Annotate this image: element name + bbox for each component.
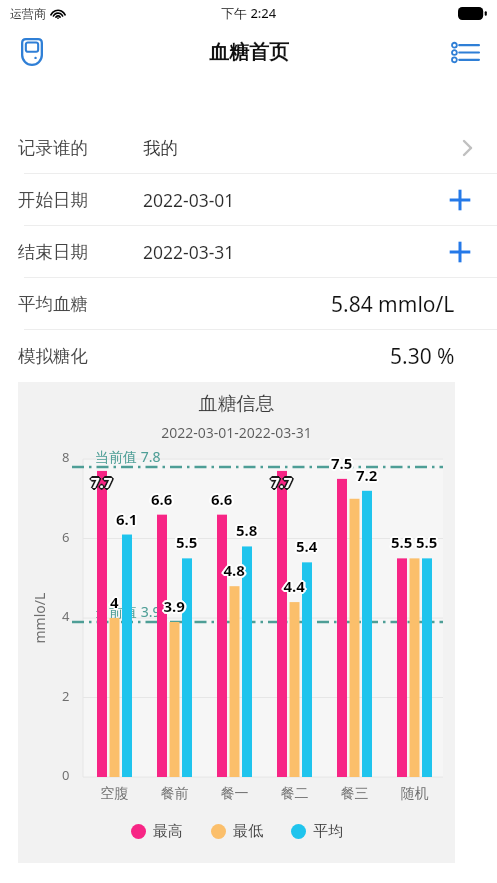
staticText: 5.84 mmlo/L [331,290,455,319]
button[interactable]: 模拟糖化 [0,330,497,382]
staticText: 记录谁的 [18,137,88,159]
button[interactable]: List menu [447,34,483,70]
button[interactable]: 平均血糖 [0,278,497,330]
button[interactable]: 记录谁的 [0,122,497,174]
staticText: 下午 2:24 [221,4,277,22]
staticText: 2022-03-01 [143,188,235,212]
staticText: 最低 [233,822,263,841]
staticText: 结束日期 [18,241,88,263]
staticText: 开始日期 [18,189,88,211]
staticText: 模拟糖化 [18,345,88,367]
staticText: 血糖首页 [209,40,289,65]
staticText: 最高 [153,822,183,841]
staticText: 平均 [313,822,343,841]
staticText: 运营商 [10,6,46,21]
staticText: 5.30 % [390,342,455,371]
staticText: 2022-03-01-2022-03-31 [18,423,455,442]
staticText: 血糖信息 [18,392,455,416]
staticText: 平均血糖 [18,293,88,315]
button[interactable]: 开始日期 [0,174,497,226]
staticText: 我的 [143,137,178,159]
button[interactable]: Glucose meter [12,32,52,72]
staticText: 2022-03-31 [143,240,235,264]
button[interactable]: 结束日期 [0,226,497,278]
